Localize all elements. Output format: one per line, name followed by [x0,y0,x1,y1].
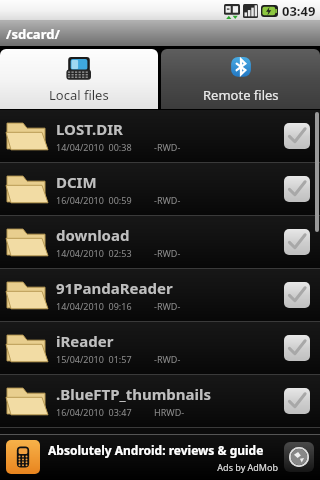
staticText: Remote files [203,86,279,104]
button[interactable]: Select LOST.DIR [284,123,310,149]
button[interactable]: Select DCIM [284,176,310,202]
staticText: 91PandaReader [56,278,173,298]
staticText: HRWD- [154,406,185,418]
staticText: /sdcard/ [6,25,60,43]
staticText: download [56,225,130,245]
button[interactable]: Remote files [161,49,320,109]
staticText: .BlueFTP_thumbnails [56,384,212,404]
staticText: -RWD- [154,300,181,312]
staticText: 14/04/2010 00:38 [56,141,132,153]
button[interactable]: .BlueFTP_thumbnails [0,375,320,427]
button[interactable]: Local files [0,49,158,109]
staticText: 14/04/2010 02:53 [56,247,132,259]
staticText: -RWD- [154,141,181,153]
staticText: Ads by AdMob [48,461,278,473]
button[interactable]: Open ad in browser [284,442,314,472]
button[interactable]: DCIM [0,163,320,215]
staticText: -RWD- [154,247,181,259]
button[interactable]: Select .BlueFTP_thumbnails [284,388,310,414]
staticText: -RWD- [154,194,181,206]
staticText: Local files [49,86,109,104]
button[interactable]: Select download [284,229,310,255]
button[interactable]: download [0,216,320,268]
button[interactable]: 91PandaReader [0,269,320,321]
staticText: 14/04/2010 09:16 [56,300,132,312]
button[interactable]: Select iReader [284,335,310,361]
staticText: Absolutely Android: reviews & guide [48,442,264,458]
staticText: 16/04/2010 00:59 [56,194,132,206]
button[interactable]: Absolutely Android: reviews & guide [0,434,320,480]
button[interactable]: Select 91PandaReader [284,282,310,308]
staticText: LOST.DIR [56,119,123,139]
button[interactable]: iReader [0,322,320,374]
staticText: -RWD- [154,353,181,365]
button[interactable]: LOST.DIR [0,110,320,162]
staticText: 03:49 [282,2,316,20]
staticText: iReader [56,331,114,351]
staticText: 15/04/2010 01:57 [56,353,132,365]
staticText: 16/04/2010 03:47 [56,406,132,418]
staticText: DCIM [56,172,97,192]
